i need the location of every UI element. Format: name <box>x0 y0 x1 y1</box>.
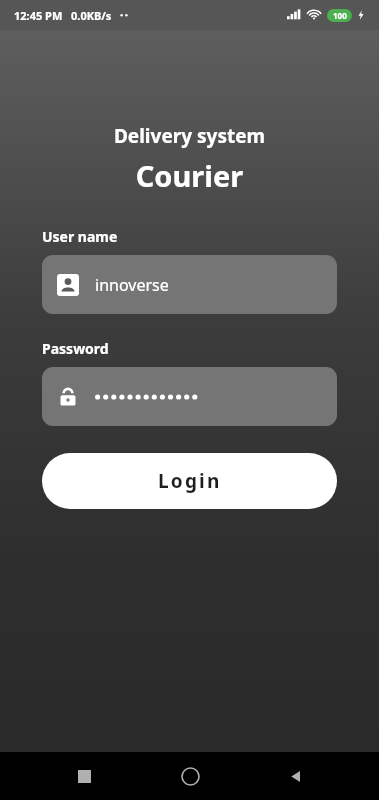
staticText: 12:45 PM <box>14 8 63 23</box>
button[interactable]: Password <box>42 367 337 426</box>
button[interactable]: Recents <box>62 754 106 798</box>
button[interactable]: Back <box>273 754 317 798</box>
staticText: Password <box>42 339 109 358</box>
other: Password <box>57 386 79 408</box>
staticText: User name <box>42 227 118 246</box>
staticText: innoverse <box>95 274 169 296</box>
staticText: Courier <box>0 156 379 195</box>
other: User <box>57 274 79 296</box>
button[interactable]: Login <box>42 453 337 509</box>
staticText: 100 <box>333 10 347 21</box>
button[interactable]: User <box>42 255 337 314</box>
staticText: 0.0KB/s <box>71 8 112 23</box>
button[interactable]: Home <box>168 754 212 798</box>
staticText: Login <box>158 468 222 494</box>
staticText: Delivery system <box>0 123 379 149</box>
